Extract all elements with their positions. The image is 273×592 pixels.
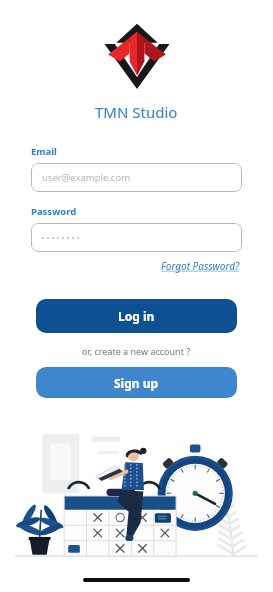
button[interactable]: Sign up [36, 367, 237, 398]
staticText: Email [31, 145, 57, 158]
button[interactable]: Log in [36, 299, 237, 333]
other: TMN Studio logo [100, 21, 174, 91]
staticText: TMN Studio [95, 102, 178, 122]
staticText: Password [31, 205, 77, 218]
staticText: Log in [118, 308, 155, 324]
button[interactable]: Forgot Password? [159, 257, 242, 275]
button[interactable] [31, 223, 242, 252]
staticText: user@example.com [42, 171, 131, 184]
staticText: Sign up [114, 375, 159, 391]
staticText: or, create a new account ? [82, 345, 191, 357]
staticText: Forgot Password? [161, 259, 240, 273]
button[interactable]: user@example.com [31, 163, 242, 192]
